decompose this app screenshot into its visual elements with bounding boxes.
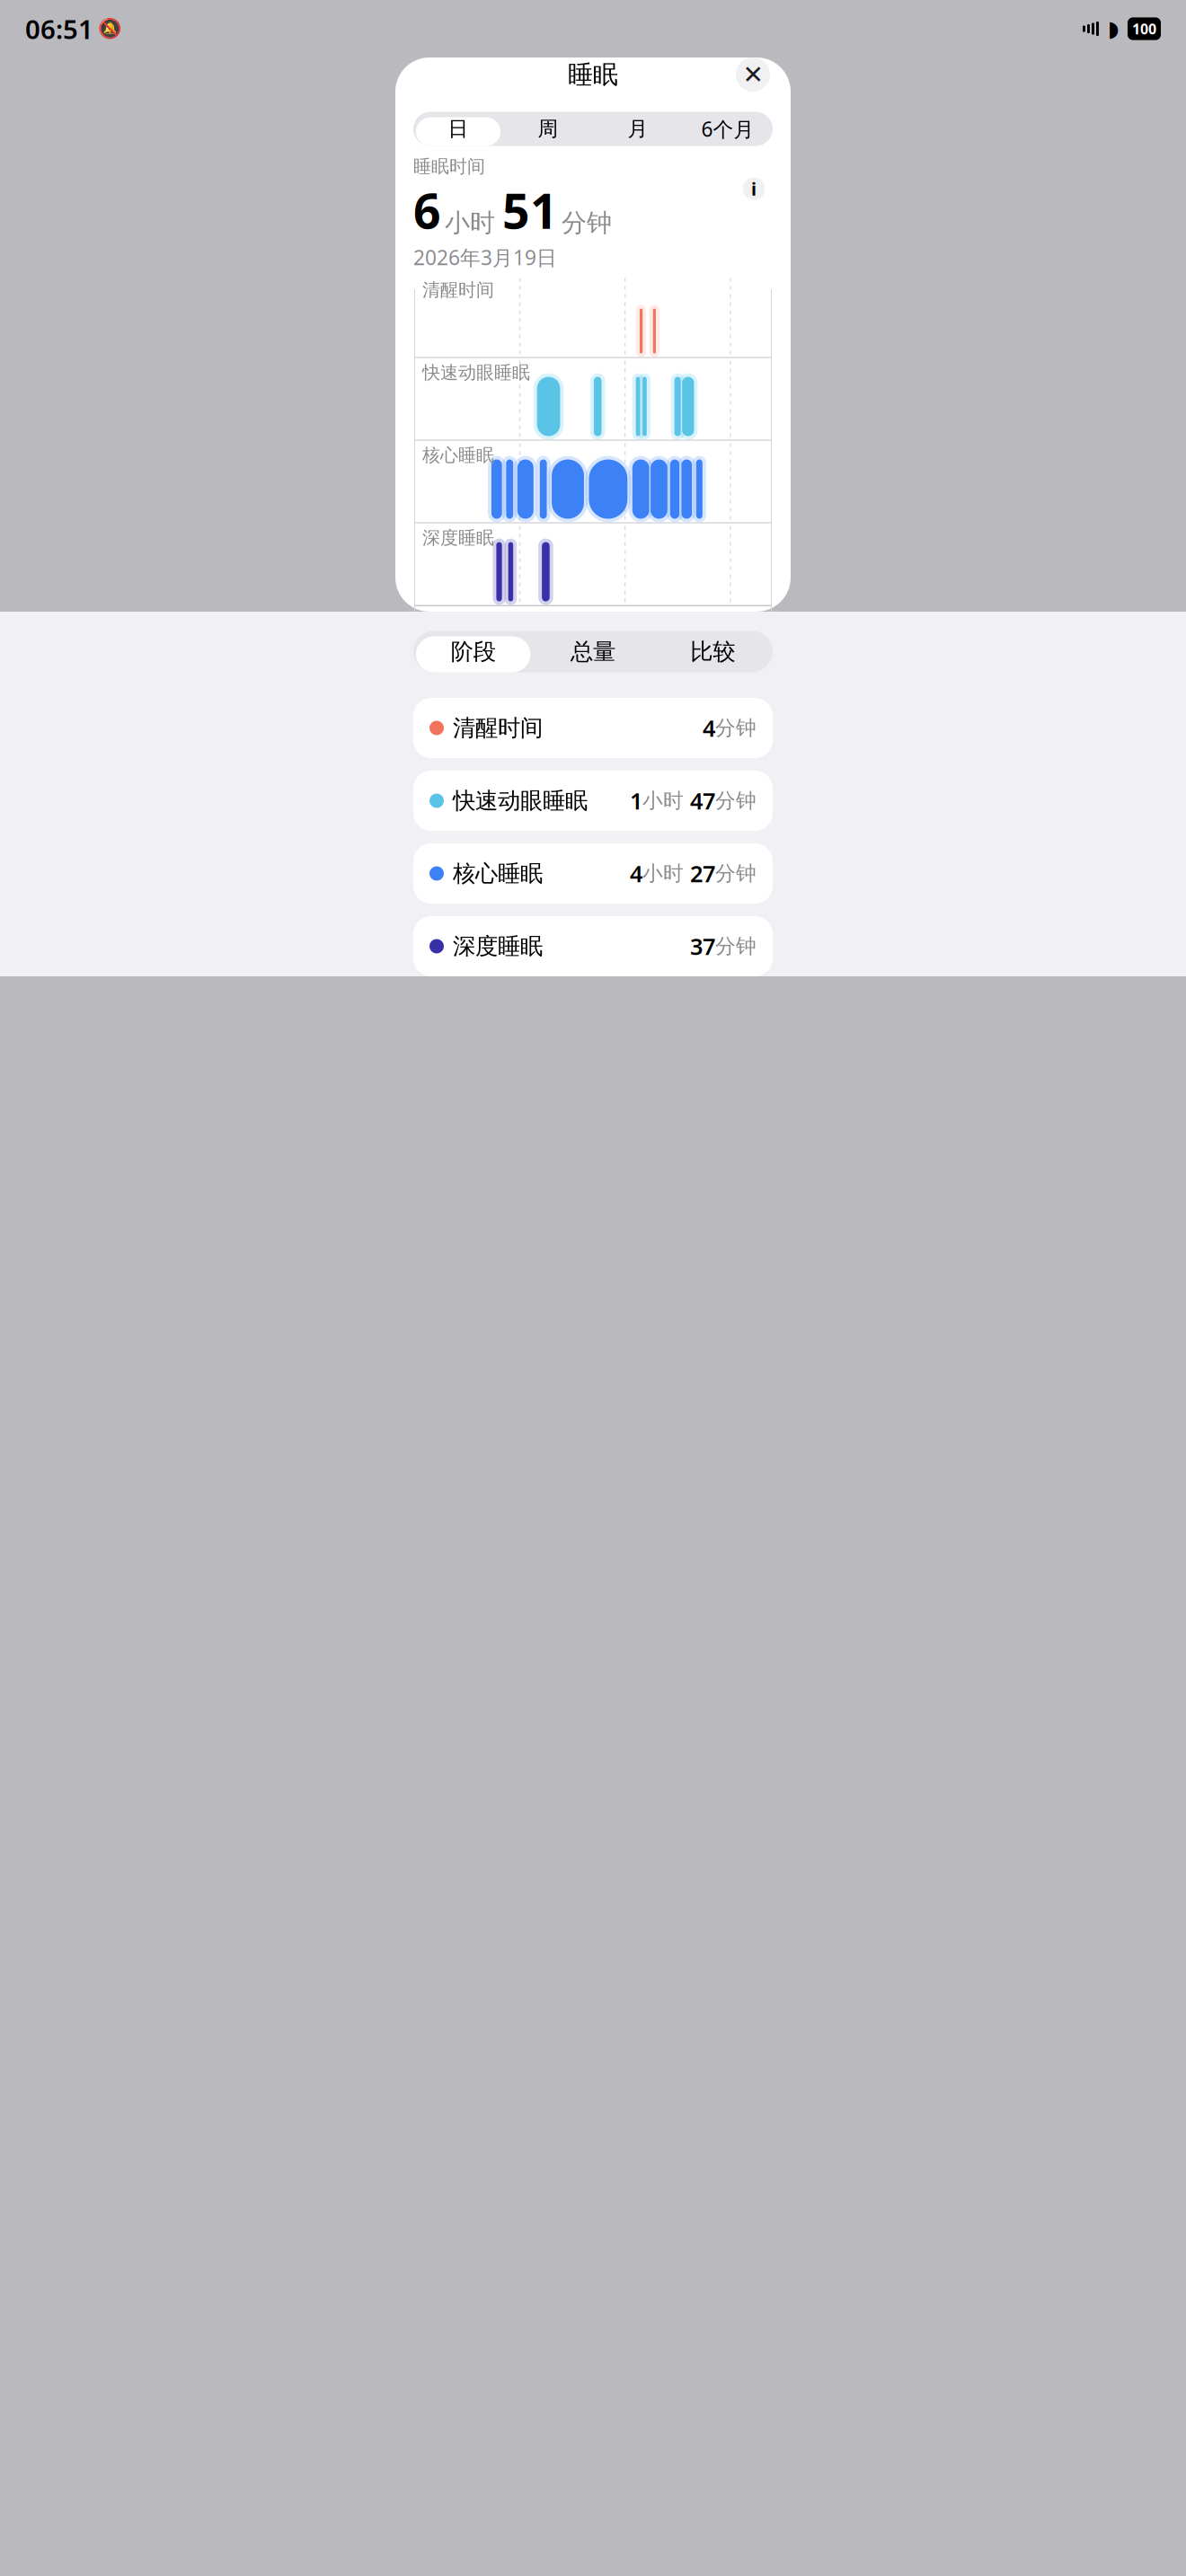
staticText: 小时 [642,788,690,813]
staticText: 分钟 [562,208,612,238]
staticText: 00:00 [522,610,566,634]
staticText: 21:00 [417,610,461,634]
staticText: 周 [538,116,558,141]
staticText: 小时 [445,208,495,238]
staticText: 深度睡眠 [422,527,494,549]
staticText: 月 [628,116,648,141]
button[interactable]: 深度睡眠 [413,916,773,976]
staticText: 分钟 [715,715,757,740]
staticText: 06:51 [25,11,93,46]
staticText: 快速动眼睡眠 [453,787,588,815]
button[interactable]: 清醒时间 [413,698,773,758]
button[interactable]: 日 [413,112,503,146]
staticText: 03:00 [627,610,671,634]
staticText: 🔕 [98,18,122,40]
button[interactable]: 信息 [735,170,773,208]
button[interactable]: 周 [503,112,593,146]
button[interactable]: 总量 [533,631,653,672]
button[interactable]: 比较 [653,631,773,672]
staticText: 51 [502,178,558,242]
staticText: 分钟 [715,861,757,886]
staticText: 100 [1132,19,1156,38]
staticText: 清醒时间 [422,279,494,301]
staticText: 核心睡眠 [422,444,494,466]
staticText: 47 [690,786,715,816]
staticText: i [751,177,757,201]
button[interactable]: 月 [593,112,683,146]
staticText: 6个月 [701,115,754,142]
staticText: 37 [690,931,715,961]
staticText: 睡眠 [568,59,618,90]
staticText: 6 [413,178,441,242]
staticText: ◗ [1108,17,1120,41]
staticText: 比较 [690,638,735,666]
staticText: 阶段 [451,638,496,666]
staticText: 2026年3月19日 [413,244,557,271]
staticText: 总量 [571,638,615,666]
button[interactable]: 关闭 [733,55,773,94]
staticText: 快速动眼睡眠 [422,362,530,384]
staticText: 小时 [642,861,690,886]
staticText: 4 [703,713,715,743]
staticText: 27 [690,858,715,889]
staticText: 4 [630,858,642,889]
staticText: 深度睡眠 [453,932,543,960]
button[interactable]: 阶段 [413,631,533,672]
staticText: 睡眠时间 [413,155,485,178]
staticText: ✕ [743,60,763,89]
staticText: 核心睡眠 [453,859,543,887]
staticText: 分钟 [715,934,757,959]
button[interactable]: 快速动眼睡眠 [413,771,773,831]
staticText: 清醒时间 [453,714,543,742]
staticText: 分钟 [715,788,757,813]
staticText: 1 [630,786,642,816]
staticText: 06:00 [732,610,776,634]
button[interactable]: 6个月 [683,112,773,146]
button[interactable]: 核心睡眠 [413,843,773,904]
staticText: 日 [448,116,469,141]
